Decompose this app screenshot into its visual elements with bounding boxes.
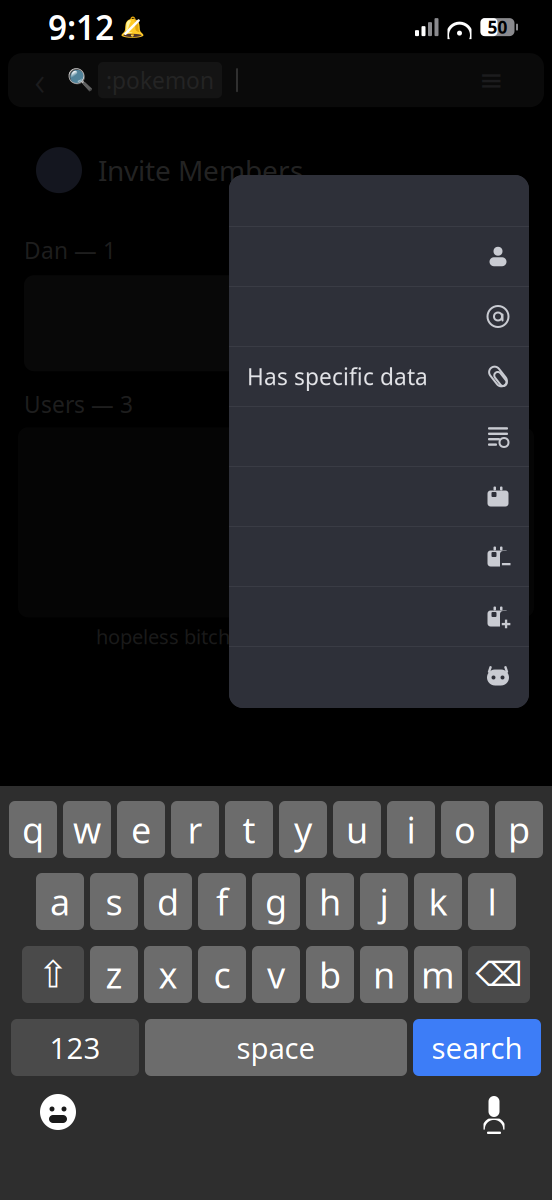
staticText: − xyxy=(501,552,511,575)
button[interactable]: y xyxy=(279,801,327,858)
staticText: space xyxy=(236,1028,315,1067)
staticText: ⌫ xyxy=(475,956,522,993)
button[interactable]: Space xyxy=(145,1019,407,1076)
staticText: g xyxy=(265,878,287,925)
button[interactable]: j xyxy=(360,873,408,930)
staticText: ≡ xyxy=(479,63,504,97)
staticText: + xyxy=(501,612,511,635)
staticText: Has specific data xyxy=(247,361,428,391)
staticText: n xyxy=(373,951,395,998)
button[interactable]: k xyxy=(414,873,462,930)
button[interactable]: n xyxy=(360,946,408,1003)
button[interactable]: m xyxy=(414,946,462,1003)
button[interactable]: Search xyxy=(413,1019,541,1076)
button[interactable]: After date xyxy=(229,587,529,646)
button[interactable]: From user xyxy=(229,227,529,286)
staticText: p xyxy=(508,806,530,853)
button[interactable]: d xyxy=(144,873,192,930)
staticText: 🔍 xyxy=(66,68,93,92)
staticText: search xyxy=(431,1028,522,1067)
button[interactable]: z xyxy=(90,946,138,1003)
staticText: k xyxy=(428,878,447,925)
button[interactable]: w xyxy=(63,801,111,858)
staticText: 🔔 xyxy=(119,16,144,39)
button[interactable]: r xyxy=(171,801,219,858)
button[interactable]: Dictate xyxy=(466,1084,522,1140)
button[interactable]: v xyxy=(252,946,300,1003)
staticText: d xyxy=(157,878,179,925)
staticText: 9:12 xyxy=(48,5,114,49)
staticText: ⇧ xyxy=(37,953,68,996)
staticText: x xyxy=(158,951,177,998)
staticText: Dan — 1 xyxy=(24,235,116,265)
staticText: a xyxy=(50,878,70,925)
staticText: Users — 3 xyxy=(24,389,133,419)
button[interactable]: Emoji xyxy=(30,1084,86,1140)
button[interactable]: Shift xyxy=(22,946,84,1003)
staticText: Invite Members xyxy=(98,151,303,189)
button[interactable]: o xyxy=(441,801,489,858)
staticText: z xyxy=(105,951,122,998)
staticText: h xyxy=(319,878,341,925)
staticText: v xyxy=(267,951,285,998)
button[interactable]: e xyxy=(117,801,165,858)
staticText: u xyxy=(346,806,368,853)
staticText: c xyxy=(213,951,230,998)
button[interactable]: q xyxy=(9,801,57,858)
button[interactable]: a xyxy=(36,873,84,930)
button[interactable]: On date xyxy=(229,467,529,526)
staticText: t xyxy=(242,806,255,853)
button[interactable]: l xyxy=(468,873,516,930)
button[interactable]: Bot messages xyxy=(229,647,529,708)
button[interactable]: Search in xyxy=(229,407,529,466)
staticText: f xyxy=(216,878,228,925)
button[interactable]: t xyxy=(225,801,273,858)
button[interactable]: b xyxy=(306,946,354,1003)
staticText: b xyxy=(319,951,341,998)
button[interactable]: Delete xyxy=(468,946,530,1003)
staticText: 123 xyxy=(49,1028,100,1067)
staticText: 50 xyxy=(487,16,507,39)
staticText: :pokemon xyxy=(106,65,214,95)
button[interactable]: x xyxy=(144,946,192,1003)
button[interactable]: g xyxy=(252,873,300,930)
button[interactable]: p xyxy=(495,801,543,858)
staticText: e xyxy=(131,806,151,853)
button[interactable]: h xyxy=(306,873,354,930)
staticText: r xyxy=(187,806,202,853)
button[interactable]: s xyxy=(90,873,138,930)
staticText: w xyxy=(73,806,101,853)
staticText: o xyxy=(454,806,476,853)
button[interactable]: f xyxy=(198,873,246,930)
button[interactable]: Numbers xyxy=(11,1019,139,1076)
staticText: y xyxy=(294,806,312,853)
staticText: j xyxy=(379,878,388,925)
button[interactable]: i xyxy=(387,801,435,858)
staticText: i xyxy=(406,806,415,853)
button[interactable]: Has specific data xyxy=(229,347,529,406)
button[interactable]: u xyxy=(333,801,381,858)
button[interactable]: Before date xyxy=(229,527,529,586)
staticText: m xyxy=(421,951,455,998)
staticText: ‹ xyxy=(34,54,45,107)
button[interactable]: Mentions xyxy=(229,287,529,346)
staticText: l xyxy=(487,878,496,925)
staticText: hopeless bitch xyxy=(96,623,230,650)
staticText: q xyxy=(22,806,44,853)
staticText: s xyxy=(105,878,122,925)
button[interactable]: c xyxy=(198,946,246,1003)
